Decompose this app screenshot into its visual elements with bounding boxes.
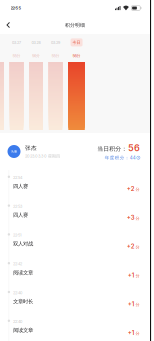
staticText: 当日积分： [97,145,127,152]
staticText: 阅读文章 [13,327,33,334]
staticText: 22:51 [13,233,22,237]
button[interactable]: 22:42 [0,256,150,285]
staticText: 22:40 [13,319,22,324]
staticText: +1 [128,329,135,336]
staticText: 头像 [11,149,17,153]
staticText: +1 [128,300,135,308]
staticText: 03.28 [32,40,41,45]
staticText: 22:53 [13,204,22,209]
staticText: 22:40 [13,290,22,295]
staticText: +2 [127,243,135,250]
staticText: 分 [135,331,139,336]
staticText: 22:42 [13,262,22,266]
staticText: 22:55 [11,6,22,10]
staticText: 03.29 [51,40,60,45]
staticText: 文章时长 [13,298,33,305]
staticText: +2 [127,185,135,192]
button[interactable]: 22:54 [0,170,150,199]
staticText: 2023.03.30 星期四 [25,153,60,159]
button[interactable]: 22:51 [0,228,150,256]
staticText: 四人赛 [13,183,28,190]
staticText: +1 [128,272,135,279]
staticText: 56 [128,142,140,153]
staticText: 阅读文章 [13,269,33,276]
staticText: 55分 [52,53,60,58]
staticText: 分 [135,187,139,192]
button[interactable]: 22:40 [0,285,150,314]
staticText: 今日 [72,40,80,45]
staticText: 03.27 [12,40,21,45]
staticText: 分 [135,245,139,250]
staticText: 分 [135,302,139,307]
staticText: 年度积分：44 [105,155,136,160]
staticText: 四人赛 [13,212,28,218]
staticText: 55分 [13,53,21,58]
staticText: 双人对战 [13,240,33,247]
staticText: 分 [135,273,139,278]
staticText: 积分明细 [65,22,85,28]
staticText: +3 [127,214,135,221]
button[interactable]: 22:40 [0,314,150,341]
button[interactable]: Back [0,16,18,34]
staticText: 56分 [72,53,80,58]
staticText: 56分 [32,53,40,58]
button[interactable]: 22:53 [0,199,150,228]
staticText: 分 [135,216,139,221]
staticText: 22:54 [13,175,22,180]
staticText: 张杰 [25,144,37,151]
